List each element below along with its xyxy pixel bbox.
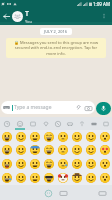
button[interactable]: Stickers [42, 187, 54, 199]
button[interactable]: Emoji [0, 130, 14, 143]
button[interactable]: Emoji [70, 143, 84, 157]
button[interactable]: Emoji [98, 130, 112, 143]
button[interactable]: Emoji [14, 130, 28, 143]
button[interactable]: Voice message [96, 102, 111, 115]
button[interactable]: Emoji category 2 [13, 117, 26, 130]
button[interactable]: Emoji category 9 [100, 117, 112, 130]
staticText: 🔒 Messages you send to this group are no… [11, 40, 101, 56]
button[interactable]: Emoji [70, 130, 84, 143]
button[interactable]: Emoji [98, 171, 112, 185]
staticText: JULY 2, 2016 [44, 29, 68, 34]
button[interactable]: Emoji category 6 [64, 117, 76, 130]
button[interactable]: Emoji [56, 143, 70, 157]
button[interactable]: Emoji [28, 157, 42, 171]
button[interactable]: Emoji [0, 157, 14, 171]
button[interactable]: Attach [75, 104, 83, 112]
button[interactable]: Emoji [84, 171, 98, 185]
button[interactable]: GIF [57, 187, 69, 199]
button[interactable]: Emoji [42, 171, 56, 185]
button[interactable]: Emoji [28, 130, 42, 143]
button[interactable]: Emoji [42, 143, 56, 157]
button[interactable]: Emoji [42, 130, 56, 143]
button[interactable]: Emoji category 7 [76, 117, 88, 130]
button[interactable]: Group avatar [12, 11, 23, 22]
button[interactable]: Emoji [42, 157, 56, 171]
button[interactable]: Emoji [84, 130, 98, 143]
staticText: 1:09 AM [93, 1, 111, 7]
button[interactable]: Emoji [56, 171, 70, 185]
button[interactable]: Emoji category 8 [88, 117, 100, 130]
staticText: You [25, 19, 32, 24]
button[interactable]: Emoji [98, 143, 112, 157]
button[interactable]: 🔒 Messages you send to this group are no… [6, 38, 106, 58]
button[interactable]: Emoji [14, 157, 28, 171]
staticText: Type a message [14, 104, 52, 111]
button[interactable]: Emoji [84, 157, 98, 171]
button[interactable]: Emoji [70, 157, 84, 171]
button[interactable]: Emoji [0, 171, 14, 185]
button[interactable]: Emoji [0, 143, 14, 157]
staticText: T [25, 9, 29, 19]
button[interactable]: Emoji [70, 171, 84, 185]
button[interactable]: Emoji [56, 130, 70, 143]
button[interactable]: Emoji [14, 143, 28, 157]
button[interactable]: Emoji [98, 157, 112, 171]
button[interactable]: Emoji category 3 [26, 117, 39, 130]
button[interactable]: Type a message [1, 101, 95, 114]
button[interactable]: Emoji category 5 [52, 117, 64, 130]
button[interactable]: Emoji [14, 171, 28, 185]
button[interactable]: Backspace [96, 187, 108, 199]
button[interactable]: Camera [84, 104, 92, 112]
button[interactable]: Emoji [28, 143, 42, 157]
button[interactable]: Emoji [56, 157, 70, 171]
button[interactable]: Emoji category 1 [0, 117, 13, 130]
button[interactable]: Emoji [84, 143, 98, 157]
button[interactable]: Emoji category 4 [39, 117, 52, 130]
button[interactable]: Back [1, 11, 12, 22]
button[interactable]: Emoji [28, 171, 42, 185]
button[interactable]: More options [98, 10, 110, 22]
